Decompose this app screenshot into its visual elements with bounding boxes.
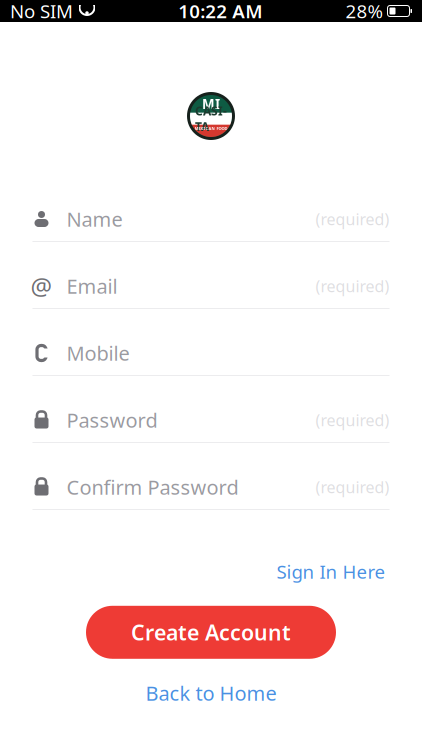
staticText: Mobile — [66, 340, 129, 366]
staticText: (required) — [315, 409, 389, 431]
staticText: Password — [66, 407, 157, 433]
staticText: CASITA — [195, 103, 227, 135]
button[interactable]: Back to Home — [135, 672, 286, 714]
staticText: MEXICAN FOOD — [194, 126, 227, 131]
staticText: 10:22 AM — [178, 0, 262, 23]
staticText: Confirm Password — [66, 474, 238, 500]
staticText: 28% — [345, 0, 383, 23]
staticText: No SIM — [10, 0, 73, 23]
button[interactable]: Create Account — [86, 606, 336, 659]
staticText: Email — [66, 273, 117, 299]
staticText: (required) — [315, 208, 389, 230]
staticText: (required) — [315, 476, 389, 498]
staticText: Create Account — [131, 618, 291, 646]
staticText: MI — [202, 95, 220, 113]
staticText: Sign In Here — [276, 559, 385, 584]
button[interactable]: Sign In Here — [272, 551, 389, 592]
staticText: (required) — [315, 275, 389, 297]
staticText: Back to Home — [145, 680, 276, 706]
staticText: @ — [30, 270, 52, 302]
staticText: Name — [66, 206, 122, 232]
